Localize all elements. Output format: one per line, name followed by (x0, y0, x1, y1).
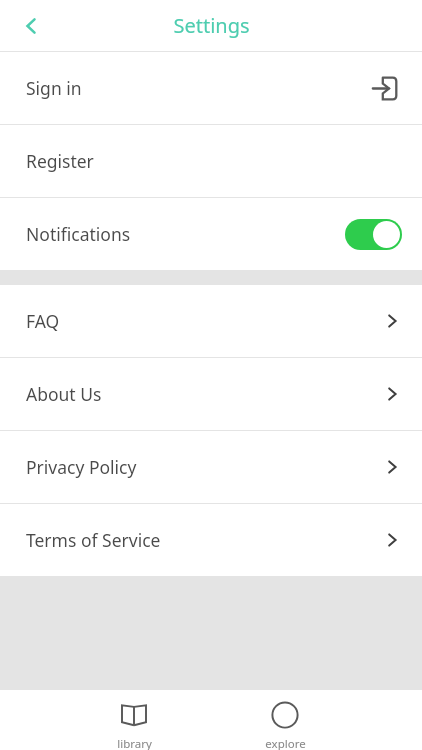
button[interactable]: About Us (0, 358, 422, 430)
staticText: library (117, 736, 152, 750)
staticText: Terms of Service (26, 528, 161, 552)
staticText: Privacy Policy (26, 455, 137, 479)
button[interactable]: Terms of Service (0, 504, 422, 576)
button[interactable]: library (74, 690, 194, 750)
button[interactable]: Back (0, 0, 62, 51)
staticText: About Us (26, 382, 102, 406)
staticText: Register (26, 149, 94, 173)
staticText: explore (265, 736, 306, 750)
button[interactable]: FAQ (0, 285, 422, 357)
button[interactable]: Register (0, 125, 422, 197)
button[interactable]: Privacy Policy (0, 431, 422, 503)
button[interactable]: Sign in (368, 71, 402, 105)
button[interactable]: Notifications (0, 198, 422, 270)
staticText: FAQ (26, 309, 60, 333)
staticText: Sign in (26, 76, 82, 100)
button[interactable]: Sign in (0, 52, 422, 124)
button[interactable]: Notifications toggle (345, 219, 402, 250)
staticText: Settings (173, 12, 250, 39)
button[interactable]: explore (225, 690, 345, 750)
staticText: Notifications (26, 222, 131, 246)
